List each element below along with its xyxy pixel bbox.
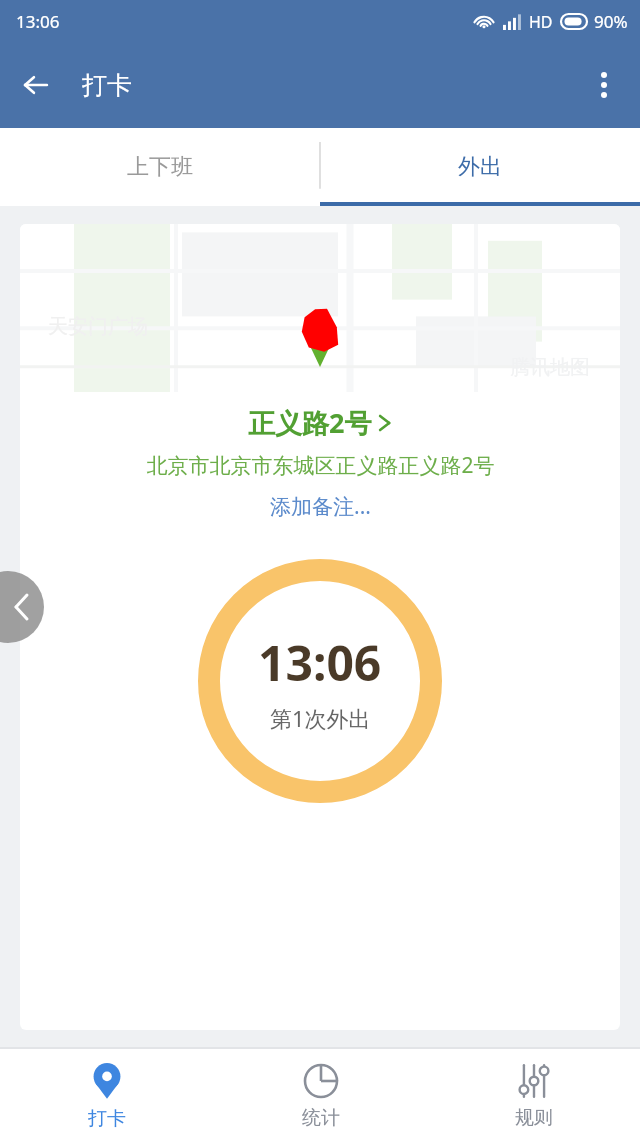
staticText: 打卡: [88, 1107, 126, 1131]
staticText: 上下班: [127, 153, 193, 181]
button[interactable]: Open drawer: [0, 571, 44, 643]
button[interactable]: 统计: [214, 1048, 427, 1145]
staticText: 第1次外出: [270, 703, 371, 733]
button[interactable]: 外出: [320, 128, 640, 206]
button[interactable]: 13:06: [198, 559, 442, 803]
button[interactable]: 打卡: [0, 1048, 214, 1145]
button[interactable]: 规则: [427, 1048, 640, 1145]
staticText: 13:06: [16, 10, 60, 33]
staticText: HD: [529, 11, 553, 33]
button[interactable]: 添加备注...: [266, 488, 375, 525]
staticText: 正义路2号: [248, 404, 372, 441]
button[interactable]: Back: [10, 59, 62, 111]
staticText: 13:06: [258, 630, 382, 695]
staticText: 90%: [594, 10, 628, 33]
staticText: 统计: [302, 1106, 340, 1130]
staticText: 天安门广场: [48, 314, 148, 339]
staticText: 外出: [458, 153, 502, 181]
staticText: 规则: [515, 1106, 553, 1130]
button[interactable]: More options: [578, 59, 630, 111]
staticText: 腾讯地图: [510, 355, 590, 380]
button[interactable]: 正义路2号: [240, 402, 400, 443]
staticText: 打卡: [82, 70, 132, 101]
button[interactable]: 上下班: [0, 128, 320, 206]
staticText: 北京市北京市东城区正义路正义路2号: [146, 451, 495, 480]
